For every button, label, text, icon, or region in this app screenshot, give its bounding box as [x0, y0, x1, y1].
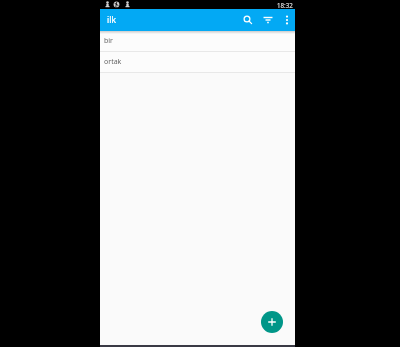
staticText: ortak [104, 57, 122, 67]
button[interactable] [238, 9, 258, 31]
button[interactable] [278, 9, 295, 31]
staticText: ilk [107, 14, 116, 26]
button[interactable]: ortak [100, 52, 295, 72]
button[interactable] [258, 9, 278, 31]
staticText: bir [104, 36, 114, 46]
button[interactable] [261, 311, 283, 333]
staticText: 18:32 [277, 1, 293, 9]
button[interactable]: bir [100, 31, 295, 51]
